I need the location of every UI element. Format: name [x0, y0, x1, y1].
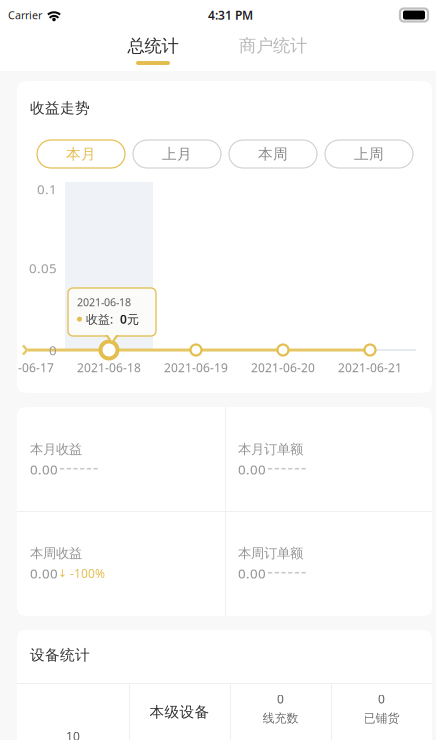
- staticText: 商户统计: [239, 35, 307, 56]
- staticText: 本月订单额: [238, 441, 303, 457]
- staticText: 0.1: [37, 180, 57, 198]
- button[interactable]: 本周: [229, 140, 317, 168]
- staticText: 0: [49, 341, 57, 359]
- staticText: 总统计: [127, 35, 178, 57]
- button[interactable]: 本月收益: [17, 407, 225, 511]
- staticText: 0: [277, 691, 284, 707]
- staticText: 0元: [120, 311, 139, 327]
- button[interactable]: 上周: [325, 140, 413, 168]
- staticText: 2021-06-20: [251, 359, 315, 375]
- staticText: 0.00: [30, 460, 58, 478]
- staticText: 收益:: [86, 311, 116, 327]
- staticText: 2021-06-18: [77, 359, 141, 375]
- staticText: 上周: [354, 145, 384, 163]
- staticText: 线充数: [262, 711, 298, 726]
- button[interactable]: 本周订单额: [17, 407, 224, 512]
- staticText: 0: [378, 691, 385, 707]
- staticText: 0.05: [29, 259, 57, 277]
- staticText: 0.00: [238, 564, 266, 582]
- staticText: 收益走势: [30, 99, 90, 117]
- staticText: 4:31 PM: [208, 7, 253, 23]
- staticText: 10: [66, 728, 80, 740]
- staticText: 2021-06-21: [338, 359, 402, 375]
- staticText: 2021-06-17: [0, 359, 54, 375]
- staticText: 2021-06-19: [164, 359, 228, 375]
- staticText: 本周订单额: [238, 545, 303, 561]
- staticText: 0.00: [238, 460, 266, 478]
- button[interactable]: 本月: [37, 140, 125, 168]
- staticText: 0.00: [30, 564, 58, 582]
- staticText: -100%: [67, 565, 105, 581]
- staticText: 上月: [162, 145, 192, 163]
- staticText: 本周: [258, 145, 288, 163]
- staticText: 本月: [66, 145, 96, 163]
- button[interactable]: 上月: [133, 140, 221, 168]
- staticText: 本月收益: [30, 441, 82, 457]
- button[interactable]: 本周收益: [17, 407, 225, 512]
- staticText: 本级设备: [149, 703, 209, 721]
- staticText: 2021-06-18: [77, 295, 131, 309]
- staticText: 设备统计: [30, 646, 90, 664]
- staticText: ↓: [58, 567, 67, 579]
- staticText: Carrier: [8, 8, 42, 22]
- staticText: 已铺货: [363, 711, 399, 726]
- button[interactable]: 本月订单额: [17, 407, 224, 511]
- staticText: 本周收益: [30, 545, 82, 561]
